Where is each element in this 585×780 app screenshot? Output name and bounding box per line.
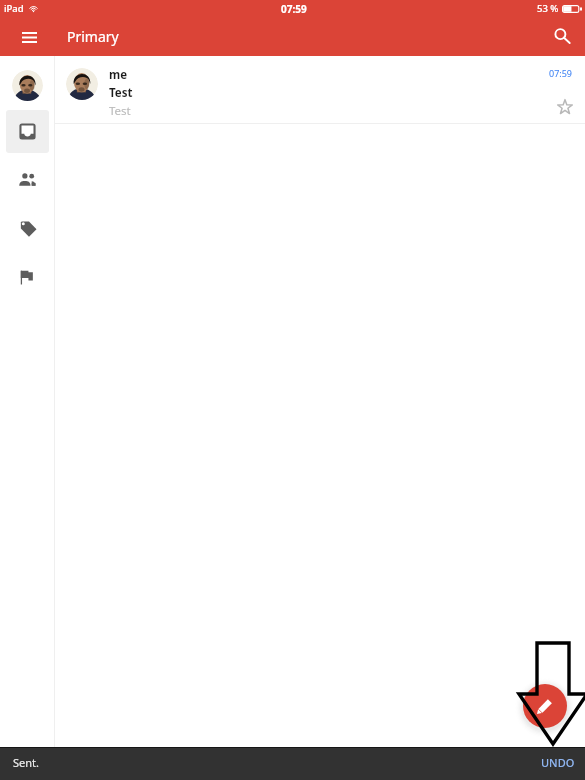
button[interactable]: me: [55, 56, 585, 124]
button[interactable]: Account: [12, 70, 43, 101]
staticText: iPad: [4, 2, 24, 15]
button[interactable]: UNDO: [529, 749, 585, 778]
button[interactable]: Updates: [6, 255, 49, 298]
staticText: UNDO: [541, 755, 575, 770]
staticText: me: [109, 67, 128, 83]
button[interactable]: Inbox: [6, 110, 49, 153]
staticText: 07:59: [549, 67, 573, 79]
staticText: 53 %: [537, 2, 559, 15]
button[interactable]: Search: [542, 17, 582, 54]
staticText: Test: [109, 103, 131, 119]
staticText: 07:59: [281, 2, 307, 16]
button[interactable]: Promotions: [6, 207, 49, 250]
staticText: Sent.: [13, 755, 39, 770]
staticText: Primary: [67, 27, 119, 46]
button[interactable]: Compose: [523, 684, 567, 728]
button[interactable]: Menu: [9, 19, 49, 56]
button[interactable]: Social: [6, 159, 49, 202]
staticText: Test: [109, 85, 133, 101]
button[interactable]: Star: [552, 94, 578, 120]
